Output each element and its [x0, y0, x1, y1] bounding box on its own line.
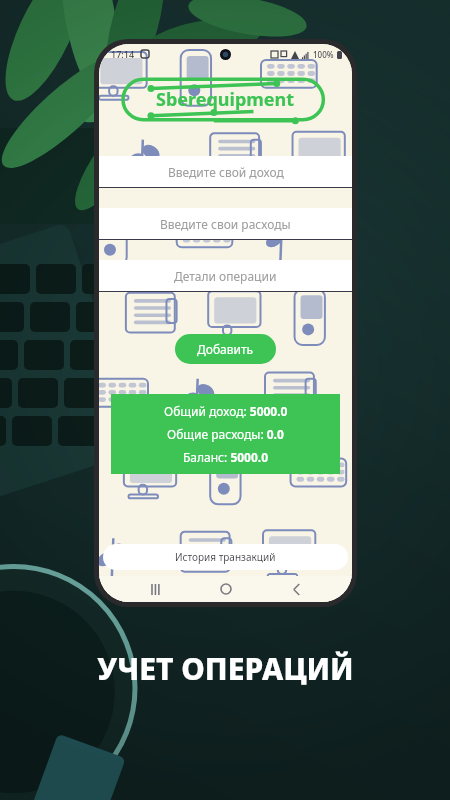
- staticText: Введите свои расходы: [160, 216, 291, 232]
- staticText: Баланс: 5000.0: [183, 449, 269, 465]
- staticText: Детали операции: [174, 268, 277, 284]
- staticText: Добавить: [197, 341, 254, 357]
- staticText: История транзакций: [175, 550, 276, 564]
- button[interactable]: Добавить: [175, 334, 276, 364]
- button[interactable]: История транзакций: [103, 544, 348, 570]
- staticText: Общие расходы: 0.0: [167, 426, 284, 442]
- staticText: 100%: [313, 49, 334, 60]
- button[interactable]: Home: [211, 576, 241, 602]
- staticText: 17:14: [111, 48, 135, 60]
- staticText: Общий доход: 5000.0: [164, 403, 288, 419]
- button[interactable]: Детали операции: [99, 260, 352, 292]
- button[interactable]: Back: [281, 576, 311, 602]
- staticText: Введите свой доход: [168, 164, 284, 180]
- button[interactable]: Recents: [140, 576, 170, 602]
- button[interactable]: Введите свои расходы: [99, 208, 352, 240]
- staticText: УЧЕТ ОПЕРАЦИЙ: [97, 648, 354, 689]
- button[interactable]: Введите свой доход: [99, 156, 352, 188]
- staticText: Sberequipment: [156, 87, 295, 112]
